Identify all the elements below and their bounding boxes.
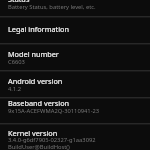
staticText: Status: [8, 0, 30, 4]
staticText: C6603: [8, 58, 25, 66]
staticText: Kernel version: [8, 128, 58, 138]
staticText: Model number: [8, 49, 59, 59]
button[interactable]: [0, 17, 150, 43]
staticText: Battery Status, battery level, etc.: [8, 3, 96, 11]
button[interactable]: [0, 44, 150, 70]
staticText: 4.1.2: [8, 85, 22, 93]
staticText: BuildUser@BuildHost(): [8, 143, 70, 150]
staticText: Android version: [8, 76, 63, 86]
staticText: Baseband version: [8, 98, 70, 108]
button[interactable]: [0, 71, 150, 97]
button[interactable]: [0, 98, 150, 123]
button[interactable]: [0, 0, 150, 16]
staticText: 9x15A-ACEFWMA2Q-30110941-23: [8, 107, 100, 115]
button[interactable]: [0, 124, 150, 150]
staticText: 3.4.0-g6df7905-02327-g1aa3092: [8, 136, 96, 144]
staticText: Legal information: [8, 24, 69, 34]
